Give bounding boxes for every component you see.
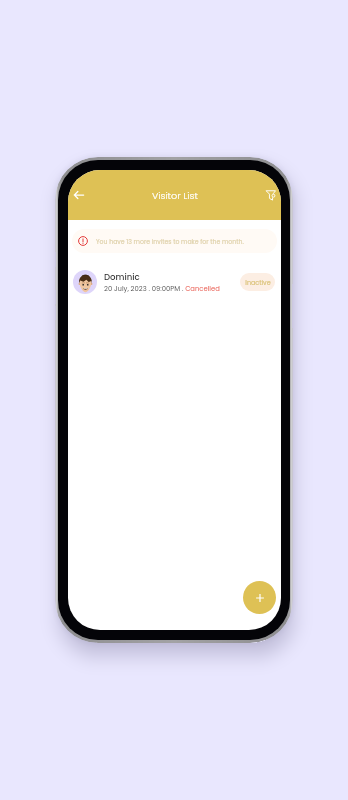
button[interactable]: Dominic: [68, 267, 281, 297]
button[interactable]: You have 13 more invites to make for the…: [72, 229, 277, 253]
staticText: You have 13 more invites to make for the…: [96, 237, 244, 246]
staticText: Dominic: [104, 271, 140, 283]
button[interactable]: Filter: [262, 186, 280, 204]
button[interactable]: Inactive: [240, 273, 275, 291]
button[interactable]: Back: [69, 185, 89, 205]
staticText: 20 July, 2023 . 09:00PM . Cancelled: [104, 284, 220, 294]
staticText: Visitor List: [152, 189, 198, 202]
button[interactable]: Add visitor: [243, 581, 276, 614]
staticText: Inactive: [245, 278, 271, 287]
